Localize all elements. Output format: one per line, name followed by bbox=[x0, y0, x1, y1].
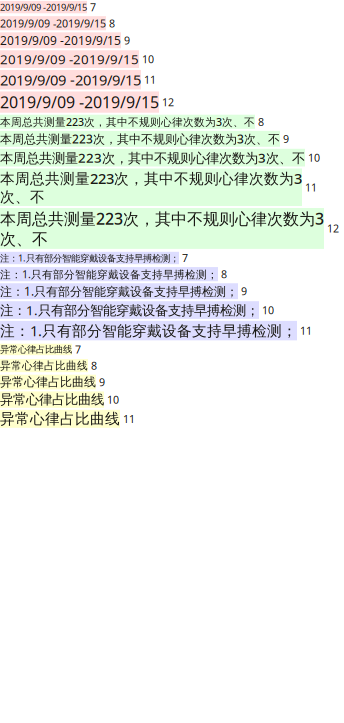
staticText: 本周总共测量223次，其中不规则心律次数为3次、不 bbox=[0, 149, 305, 166]
staticText: 9 bbox=[96, 375, 105, 389]
staticText: 注：1.只有部分智能穿戴设备支持早搏检测； bbox=[0, 267, 218, 281]
staticText: 异常心律占比曲线 bbox=[0, 410, 120, 428]
staticText: 2019/9/09 -2019/9/15 bbox=[0, 70, 141, 89]
staticText: 10 bbox=[259, 303, 274, 317]
staticText: 注：1.只有部分智能穿戴设备支持早搏检测； bbox=[0, 252, 179, 264]
staticText: 11 bbox=[302, 180, 317, 194]
staticText: 2019/9/09 -2019/9/15 bbox=[0, 16, 106, 30]
staticText: 2019/9/09 -2019/9/15 bbox=[0, 50, 139, 68]
staticText: 8 bbox=[88, 358, 97, 373]
staticText: 本周总共测量223次，其中不规则心律次数为3次、不 bbox=[0, 131, 280, 147]
staticText: 异常心律占比曲线 bbox=[0, 375, 96, 389]
staticText: 本周总共测量223次，其中不规则心律次数为3次、不 bbox=[0, 115, 255, 129]
staticText: 异常心律占比曲线 bbox=[0, 391, 104, 408]
staticText: 12 bbox=[159, 95, 174, 109]
staticText: 10 bbox=[104, 392, 119, 407]
staticText: 注：1.只有部分智能穿戴设备支持早搏检测； bbox=[0, 321, 297, 340]
staticText: 2019/9/09 -2019/9/15 bbox=[0, 91, 159, 113]
staticText: 12 bbox=[324, 221, 339, 236]
staticText: 9 bbox=[121, 33, 130, 47]
staticText: 9 bbox=[280, 132, 289, 146]
staticText: 7 bbox=[87, 0, 96, 14]
staticText: 7 bbox=[179, 251, 188, 265]
staticText: 注：1.只有部分智能穿戴设备支持早搏检测； bbox=[0, 301, 259, 319]
staticText: 异常心律占比曲线 bbox=[0, 359, 88, 372]
staticText: 8 bbox=[218, 267, 227, 281]
staticText: 8 bbox=[255, 115, 264, 129]
staticText: 2019/9/09 -2019/9/15 bbox=[0, 1, 87, 13]
staticText: 11 bbox=[297, 323, 312, 338]
staticText: 注：1.只有部分智能穿戴设备支持早搏检测； bbox=[0, 283, 238, 299]
staticText: 7 bbox=[72, 342, 81, 357]
staticText: 10 bbox=[139, 52, 154, 66]
staticText: 2019/9/09 -2019/9/15 bbox=[0, 32, 121, 48]
staticText: 8 bbox=[106, 16, 115, 30]
staticText: 本周总共测量223次，其中不规则心律次数为3次、不 bbox=[0, 208, 324, 249]
staticText: 11 bbox=[120, 412, 135, 426]
staticText: 本周总共测量223次，其中不规则心律次数为3次、不 bbox=[0, 168, 302, 206]
staticText: 异常心律占比曲线 bbox=[0, 344, 72, 355]
staticText: 10 bbox=[305, 151, 320, 165]
staticText: 11 bbox=[141, 73, 156, 87]
staticText: 9 bbox=[238, 284, 247, 298]
